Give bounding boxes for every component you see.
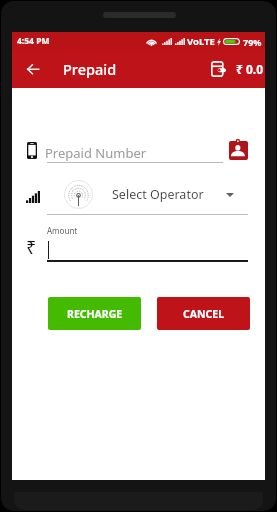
staticText: ₹ bbox=[26, 235, 37, 260]
staticText: CANCEL bbox=[183, 307, 225, 321]
staticText: 79% bbox=[243, 36, 262, 48]
staticText: Amount bbox=[47, 225, 78, 236]
staticText: Select Operator bbox=[112, 186, 204, 203]
button[interactable]: RECHARGE bbox=[48, 297, 141, 330]
staticText: VoLTE bbox=[187, 35, 215, 48]
button[interactable]: ₹ 0.0 bbox=[208, 57, 265, 81]
staticText: ₹ 0.0 bbox=[236, 61, 264, 77]
button[interactable]: CANCEL bbox=[157, 297, 250, 330]
button[interactable]: Back bbox=[19, 55, 47, 83]
staticText: 4:54 PM bbox=[17, 35, 50, 47]
button[interactable]: Pick contact bbox=[225, 136, 251, 162]
button[interactable]: Open operator list bbox=[219, 184, 240, 205]
staticText: RECHARGE bbox=[67, 307, 123, 321]
staticText: Prepaid Number bbox=[45, 144, 147, 162]
staticText: Prepaid bbox=[63, 59, 117, 79]
